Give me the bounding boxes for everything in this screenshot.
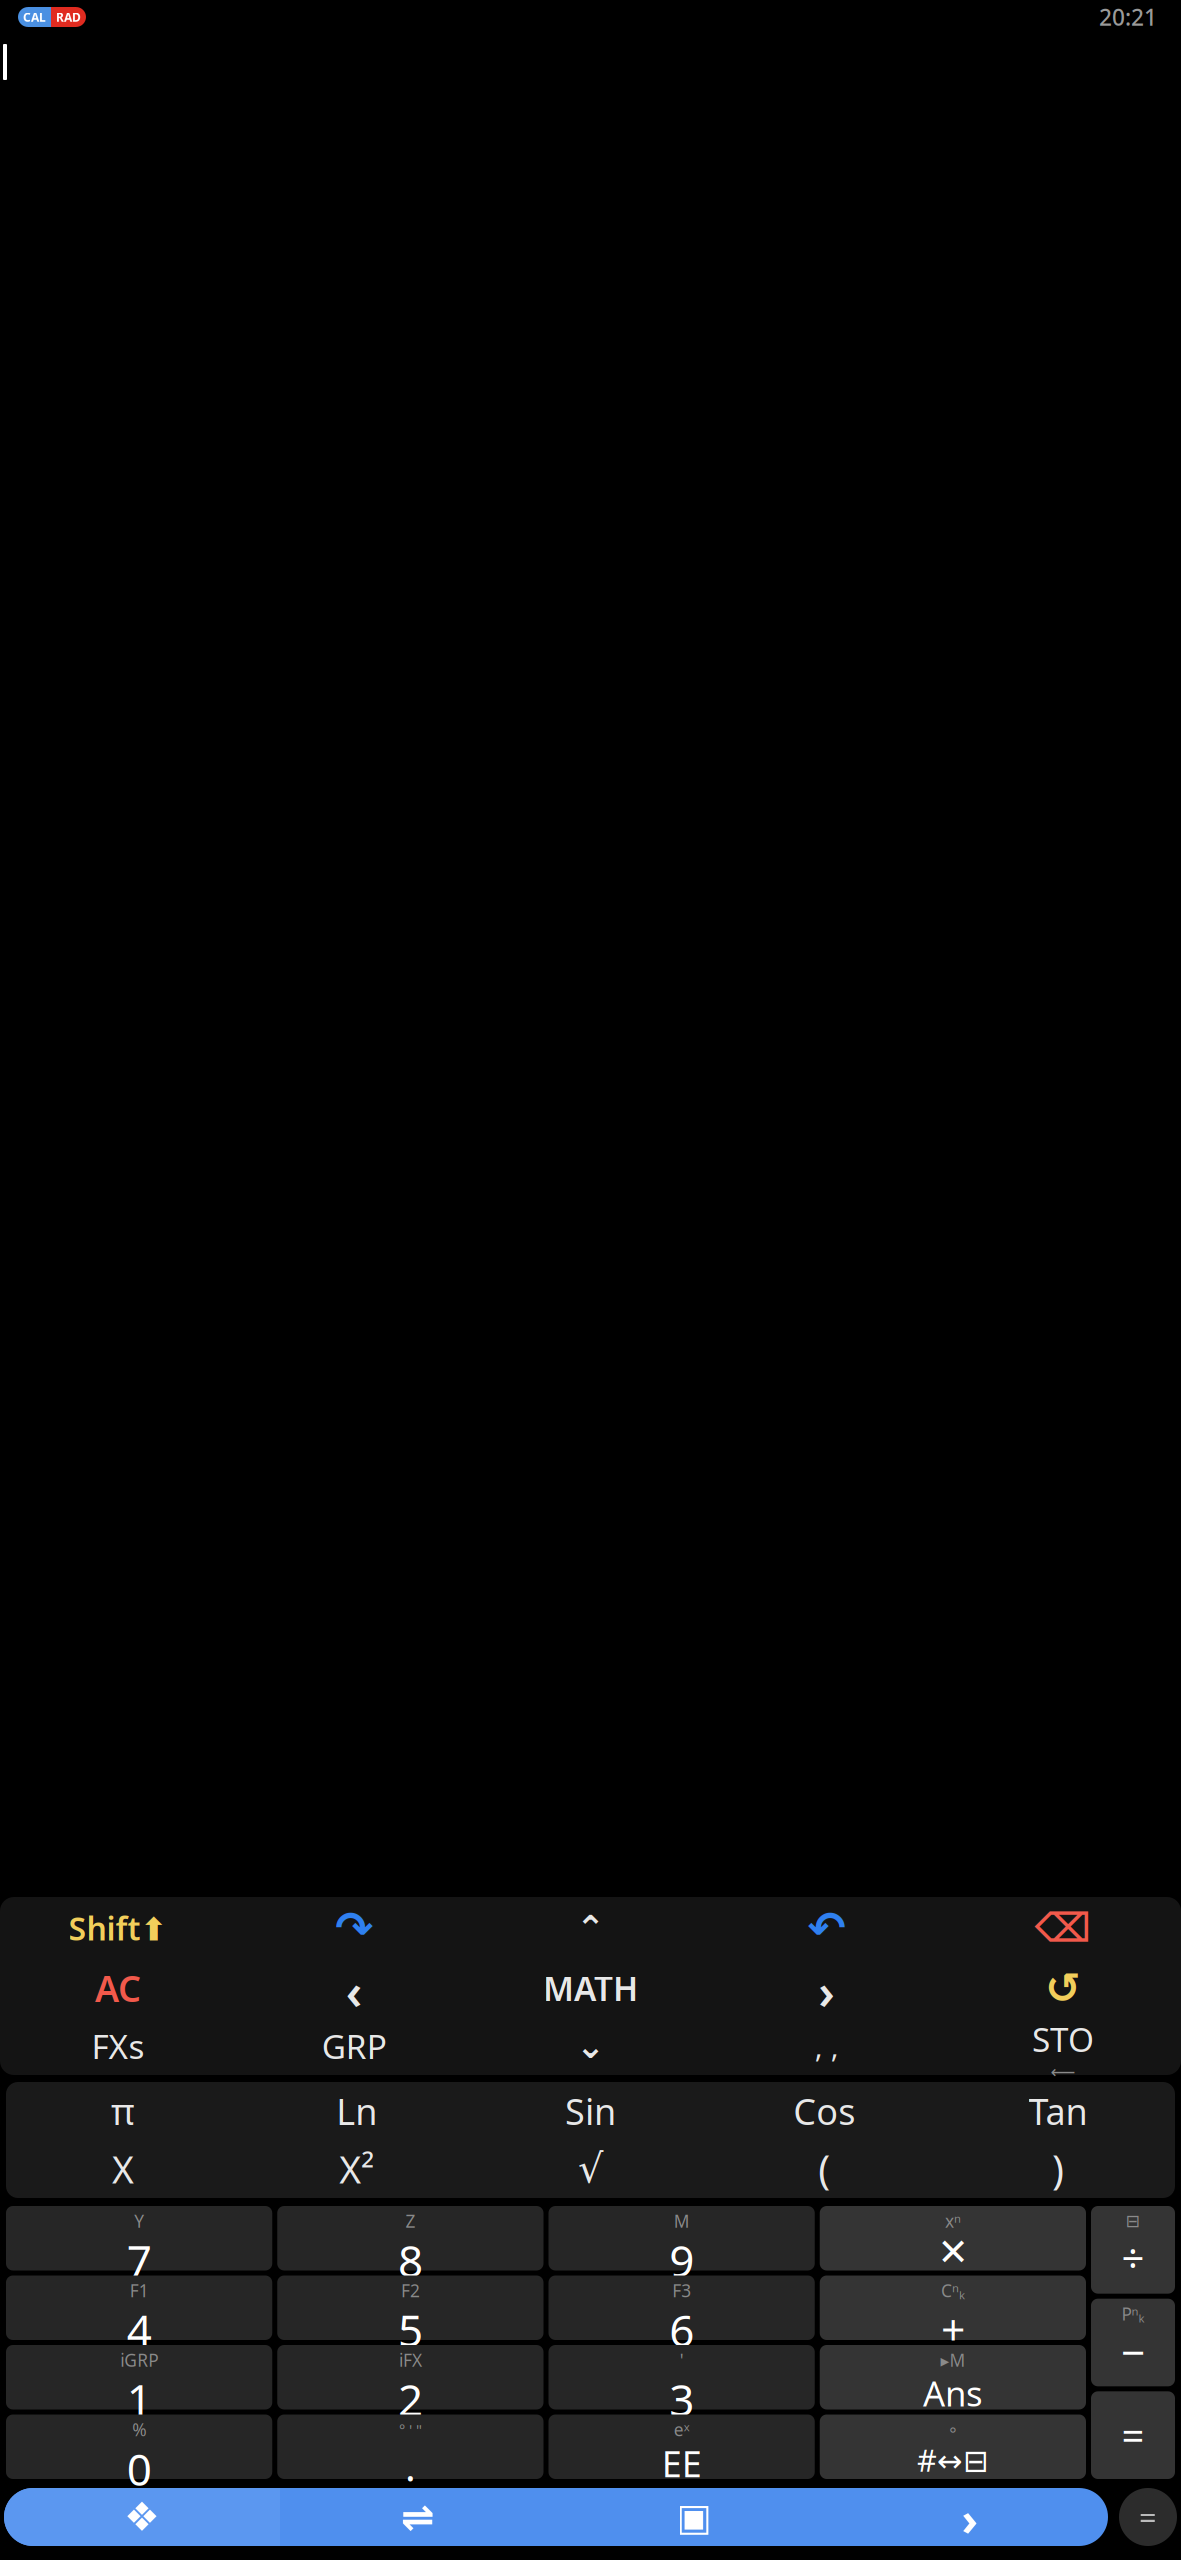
button[interactable]: #↔⊟: [820, 2414, 1086, 2479]
button[interactable]: −: [1091, 2299, 1175, 2386]
staticText: X: [112, 2144, 134, 2194]
button[interactable]: ↷: [236, 1897, 472, 1959]
staticText: MATH: [543, 1966, 638, 2010]
button[interactable]: EE: [548, 2414, 815, 2479]
button[interactable]: ⌫: [945, 1897, 1181, 1959]
button[interactable]: FXs: [0, 2017, 236, 2075]
button[interactable]: GRP: [236, 2017, 472, 2075]
button[interactable]: .: [277, 2414, 543, 2479]
staticText: ↷: [335, 1902, 373, 1954]
staticText: ⌫: [1034, 1905, 1091, 1951]
staticText: ❖: [124, 2494, 160, 2540]
button[interactable]: 2: [277, 2345, 543, 2409]
button[interactable]: Evaluate: [1119, 2488, 1177, 2546]
button[interactable]: X: [6, 2140, 240, 2198]
staticText: STO: [1032, 2017, 1094, 2061]
staticText: Z: [405, 2209, 415, 2232]
staticText: iGRP: [120, 2348, 158, 2371]
button[interactable]: π: [6, 2082, 240, 2140]
button[interactable]: ✕: [820, 2206, 1086, 2270]
button[interactable]: Tan: [941, 2082, 1175, 2140]
button[interactable]: ›: [709, 1959, 945, 2017]
button[interactable]: 9: [548, 2206, 815, 2270]
button[interactable]: ⌃: [472, 1897, 709, 1959]
staticText: ‹: [346, 1959, 363, 2023]
staticText: EE: [662, 2439, 702, 2487]
button[interactable]: Cos: [707, 2082, 941, 2140]
staticText: ⌄: [576, 2026, 605, 2066]
staticText: 8: [398, 2231, 423, 2289]
staticText: Pⁿₖ: [1121, 2302, 1144, 2325]
staticText: ▸M: [940, 2348, 965, 2371]
button[interactable]: 6: [548, 2275, 815, 2340]
staticText: Ans: [923, 2370, 983, 2416]
button[interactable]: 5: [277, 2275, 543, 2340]
button[interactable]: 7: [6, 2206, 272, 2270]
staticText: ⟵: [1050, 2062, 1075, 2082]
staticText: 2: [398, 2370, 423, 2428]
button[interactable]: AC: [0, 1959, 236, 2017]
staticText: =: [1139, 2497, 1157, 2537]
button[interactable]: Keypad layouts: [4, 2488, 280, 2546]
staticText: FXs: [92, 2024, 145, 2068]
staticText: =: [1121, 2409, 1144, 2462]
staticText: Y: [134, 2209, 144, 2232]
staticText: ° ' ": [399, 2420, 422, 2439]
staticText: ✕: [937, 2231, 968, 2273]
staticText: Ln: [336, 2087, 377, 2135]
staticText: ▣: [676, 2496, 711, 2538]
button[interactable]: ): [941, 2140, 1175, 2198]
button[interactable]: (: [707, 2140, 941, 2198]
staticText: Cⁿₖ: [941, 2279, 965, 2302]
button[interactable]: ‹: [236, 1959, 472, 2017]
staticText: 9: [669, 2231, 694, 2289]
button[interactable]: 8: [277, 2206, 543, 2270]
button[interactable]: Convert: [280, 2488, 556, 2546]
button[interactable]: ↺: [945, 1959, 1181, 2017]
button[interactable]: Equals: [1091, 2391, 1175, 2479]
button[interactable]: , ,: [709, 2017, 945, 2075]
button[interactable]: More: [832, 2488, 1108, 2546]
staticText: xⁿ: [945, 2209, 961, 2232]
button[interactable]: +: [820, 2275, 1086, 2340]
staticText: ': [680, 2348, 684, 2371]
button[interactable]: Shift⬆: [0, 1897, 236, 1959]
staticText: #↔⊟: [917, 2439, 989, 2480]
button[interactable]: Ln: [240, 2082, 474, 2140]
staticText: ›: [961, 2488, 978, 2546]
staticText: AC: [95, 1964, 141, 2012]
button[interactable]: STO: [945, 2017, 1181, 2075]
staticText: Shift⬆: [69, 1907, 168, 1949]
button[interactable]: ↶: [709, 1897, 945, 1959]
staticText: Cos: [793, 2087, 855, 2135]
staticText: ÷: [1121, 2231, 1144, 2284]
staticText: , ,: [815, 2026, 839, 2065]
button[interactable]: √: [474, 2140, 707, 2198]
button[interactable]: 3: [548, 2345, 815, 2409]
staticText: ∘: [947, 2420, 958, 2439]
button[interactable]: ⌄: [472, 2017, 709, 2075]
staticText: X²: [339, 2144, 374, 2194]
staticText: 3: [669, 2370, 694, 2428]
staticText: F3: [672, 2279, 691, 2302]
button[interactable]: Camera: [556, 2488, 832, 2546]
staticText: ⌃: [576, 1908, 605, 1948]
staticText: Sin: [565, 2087, 616, 2135]
staticText: 4: [127, 2300, 152, 2359]
staticText: √: [578, 2146, 603, 2192]
staticText: 5: [398, 2300, 423, 2359]
staticText: CAL: [23, 9, 46, 25]
button[interactable]: 0: [6, 2414, 272, 2479]
button[interactable]: X²: [240, 2140, 474, 2198]
button[interactable]: 4: [6, 2275, 272, 2340]
staticText: 1: [127, 2370, 152, 2428]
button[interactable]: 1: [6, 2345, 272, 2409]
staticText: ↺: [1045, 1964, 1081, 2012]
button[interactable]: Ans: [820, 2345, 1086, 2409]
staticText: −: [1121, 2324, 1145, 2380]
staticText: ›: [818, 1959, 835, 2023]
staticText: .: [405, 2439, 416, 2493]
button[interactable]: MATH: [472, 1959, 709, 2017]
button[interactable]: Sin: [474, 2082, 707, 2140]
button[interactable]: ÷: [1091, 2206, 1175, 2294]
